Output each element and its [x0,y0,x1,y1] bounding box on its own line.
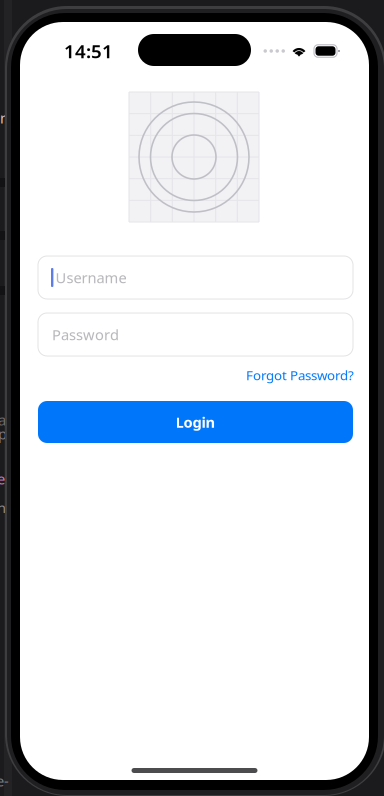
staticText: Password [52,325,119,344]
staticText: p [0,424,7,443]
staticText: a [0,410,6,429]
button[interactable]: Forgot Password? [38,365,354,385]
staticText: Forgot Password? [246,366,354,384]
staticText: n [0,108,9,127]
button[interactable]: Password [38,313,353,356]
staticText: Username [55,268,126,287]
button[interactable]: Login [38,401,353,443]
staticText: 14:51 [64,39,113,63]
button[interactable]: Username [38,256,353,299]
staticText: es) [0,771,9,796]
staticText: e [0,469,5,488]
staticText: n [0,498,6,517]
staticText: Login [175,412,215,432]
